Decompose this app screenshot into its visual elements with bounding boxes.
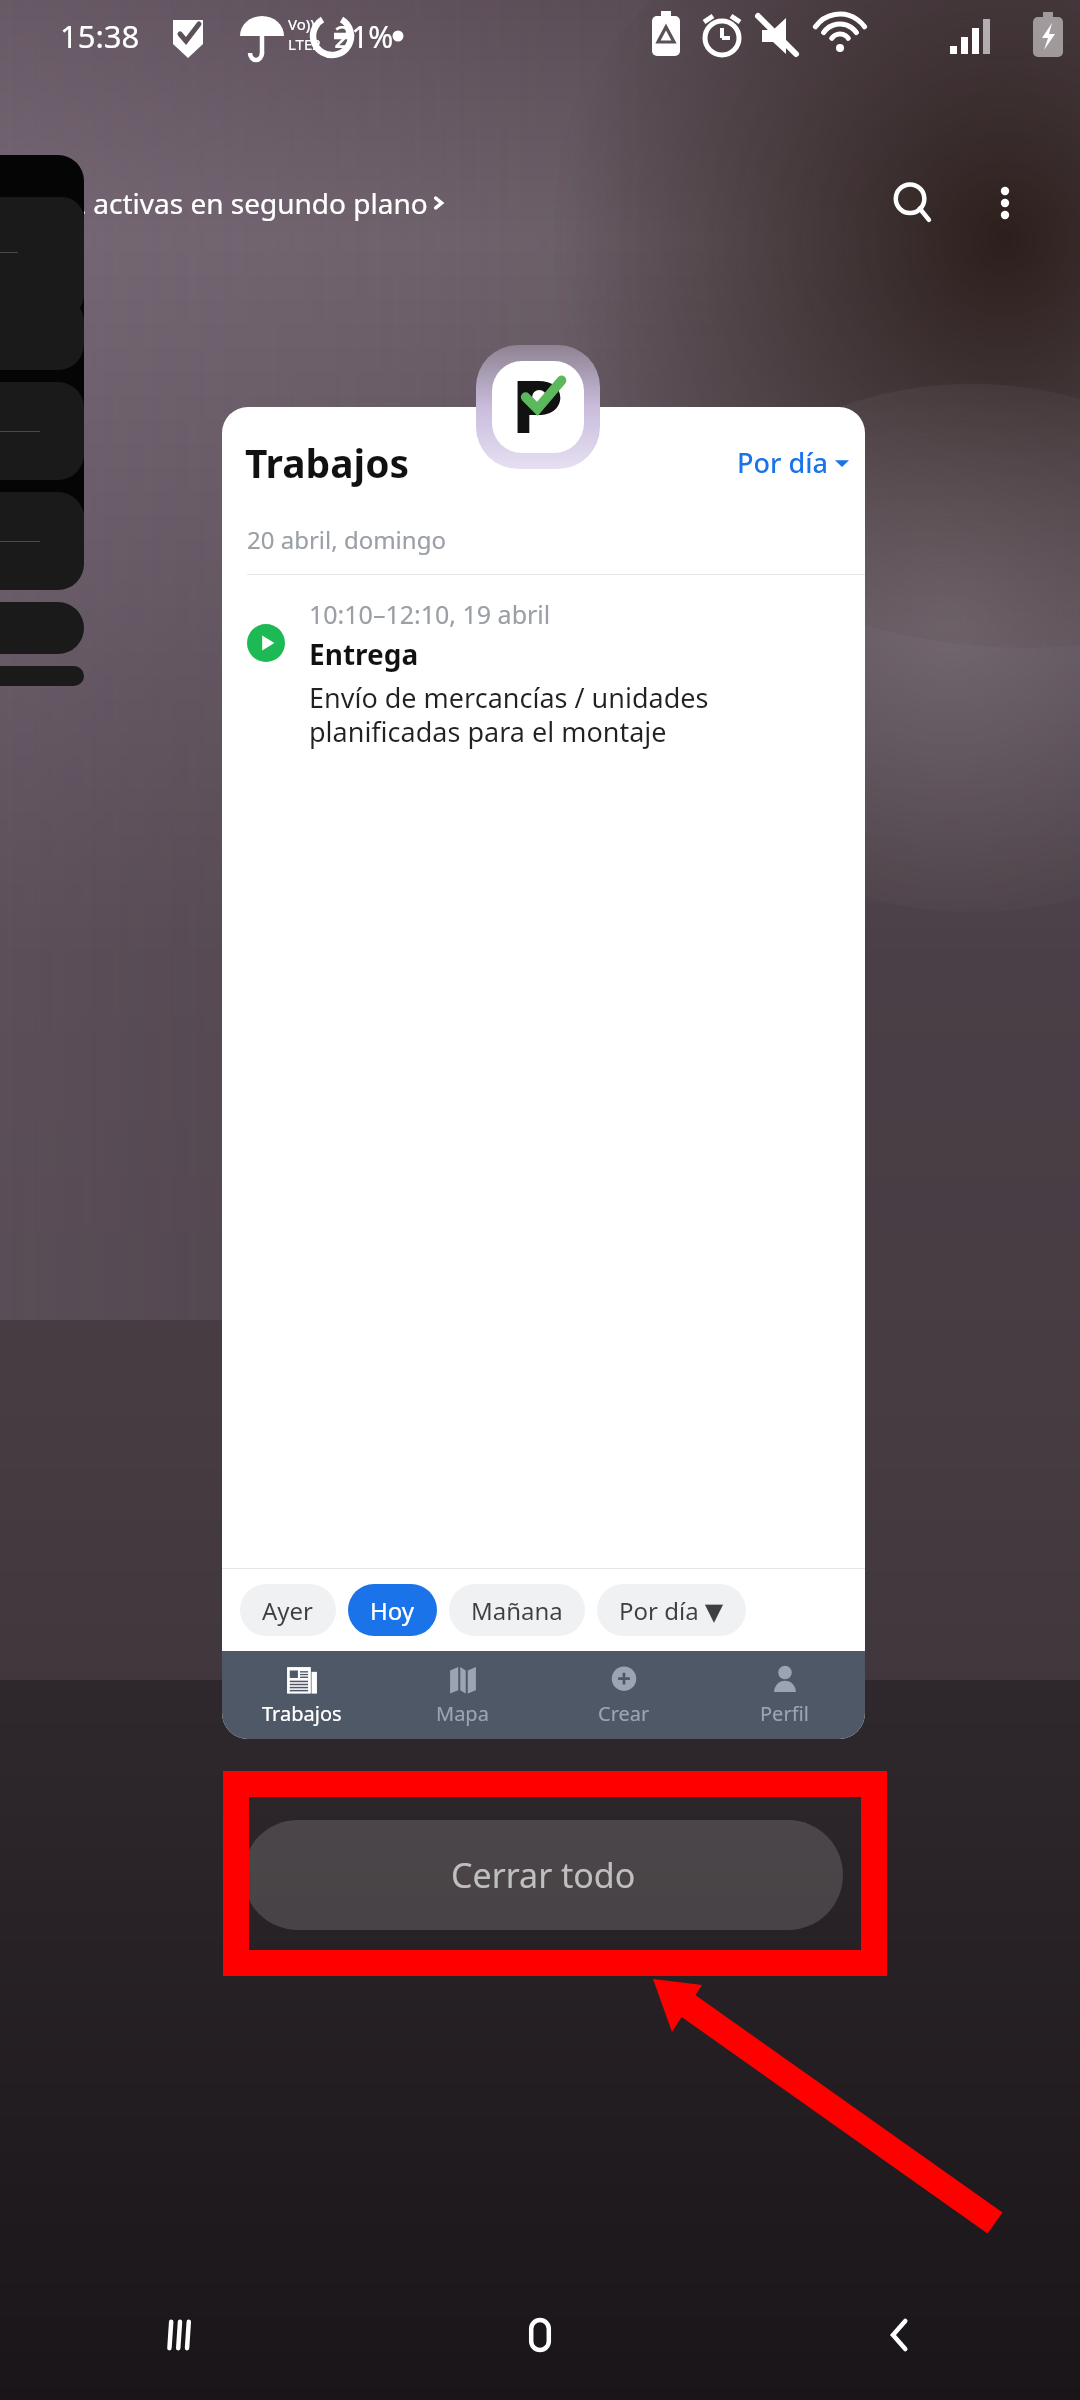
button[interactable]: Mapa (382, 1651, 543, 1739)
button[interactable]: Atrás (720, 2270, 1080, 2400)
button[interactable]: Ayer (240, 1584, 336, 1636)
button[interactable]: 10:10–12:10, 19 abril (222, 597, 865, 762)
staticText: 2 activas en segundo plano (70, 184, 428, 222)
staticText: Hoy (370, 1594, 415, 1627)
button[interactable] (0, 602, 84, 654)
staticText: Trabajos (245, 436, 410, 489)
button[interactable] (0, 296, 84, 370)
button[interactable] (0, 492, 84, 590)
staticText: Cerrar todo (451, 1852, 636, 1898)
staticText: Envío de mercancías / unidades planifica… (309, 679, 709, 750)
staticText: Por día ▼ (619, 1594, 724, 1627)
button[interactable]: Trabajos (222, 1651, 382, 1739)
button[interactable]: dos) y … (0, 155, 84, 537)
button[interactable] (476, 345, 600, 469)
staticText: Trabajos (262, 1700, 342, 1727)
staticText: LTE2 (288, 34, 321, 54)
button[interactable] (0, 382, 84, 480)
button[interactable]: Buscar (878, 168, 948, 238)
button[interactable]: Por día ▼ (597, 1584, 746, 1636)
button[interactable]: Por día (737, 444, 849, 481)
button[interactable]: Mañana (449, 1584, 585, 1636)
button[interactable] (0, 666, 84, 686)
button[interactable]: Recientes (0, 2270, 360, 2400)
staticText: Mañana (471, 1594, 563, 1627)
button[interactable]: Cerrar todo (243, 1820, 843, 1930)
staticText: 15:38 (60, 15, 140, 57)
staticText: 21% (334, 16, 394, 57)
staticText: Vo)) (288, 14, 315, 34)
button[interactable]: 2 activas en segundo plano (70, 184, 450, 222)
staticText: 10:10–12:10, 19 abril (309, 597, 551, 631)
staticText: Mapa (436, 1700, 489, 1727)
button[interactable]: Más opciones (970, 168, 1040, 238)
staticText: Ayer (262, 1594, 314, 1627)
button[interactable]: Inicio (360, 2270, 720, 2400)
button[interactable]: Perfil (704, 1651, 865, 1739)
staticText: Perfil (760, 1700, 809, 1727)
button[interactable]: Crear (543, 1651, 704, 1739)
staticText: 20 abril, domingo (247, 523, 446, 556)
staticText: Crear (598, 1700, 650, 1727)
button[interactable]: Hoy (348, 1584, 437, 1636)
staticText: Entrega (309, 635, 419, 673)
staticText: Por día (737, 444, 828, 481)
